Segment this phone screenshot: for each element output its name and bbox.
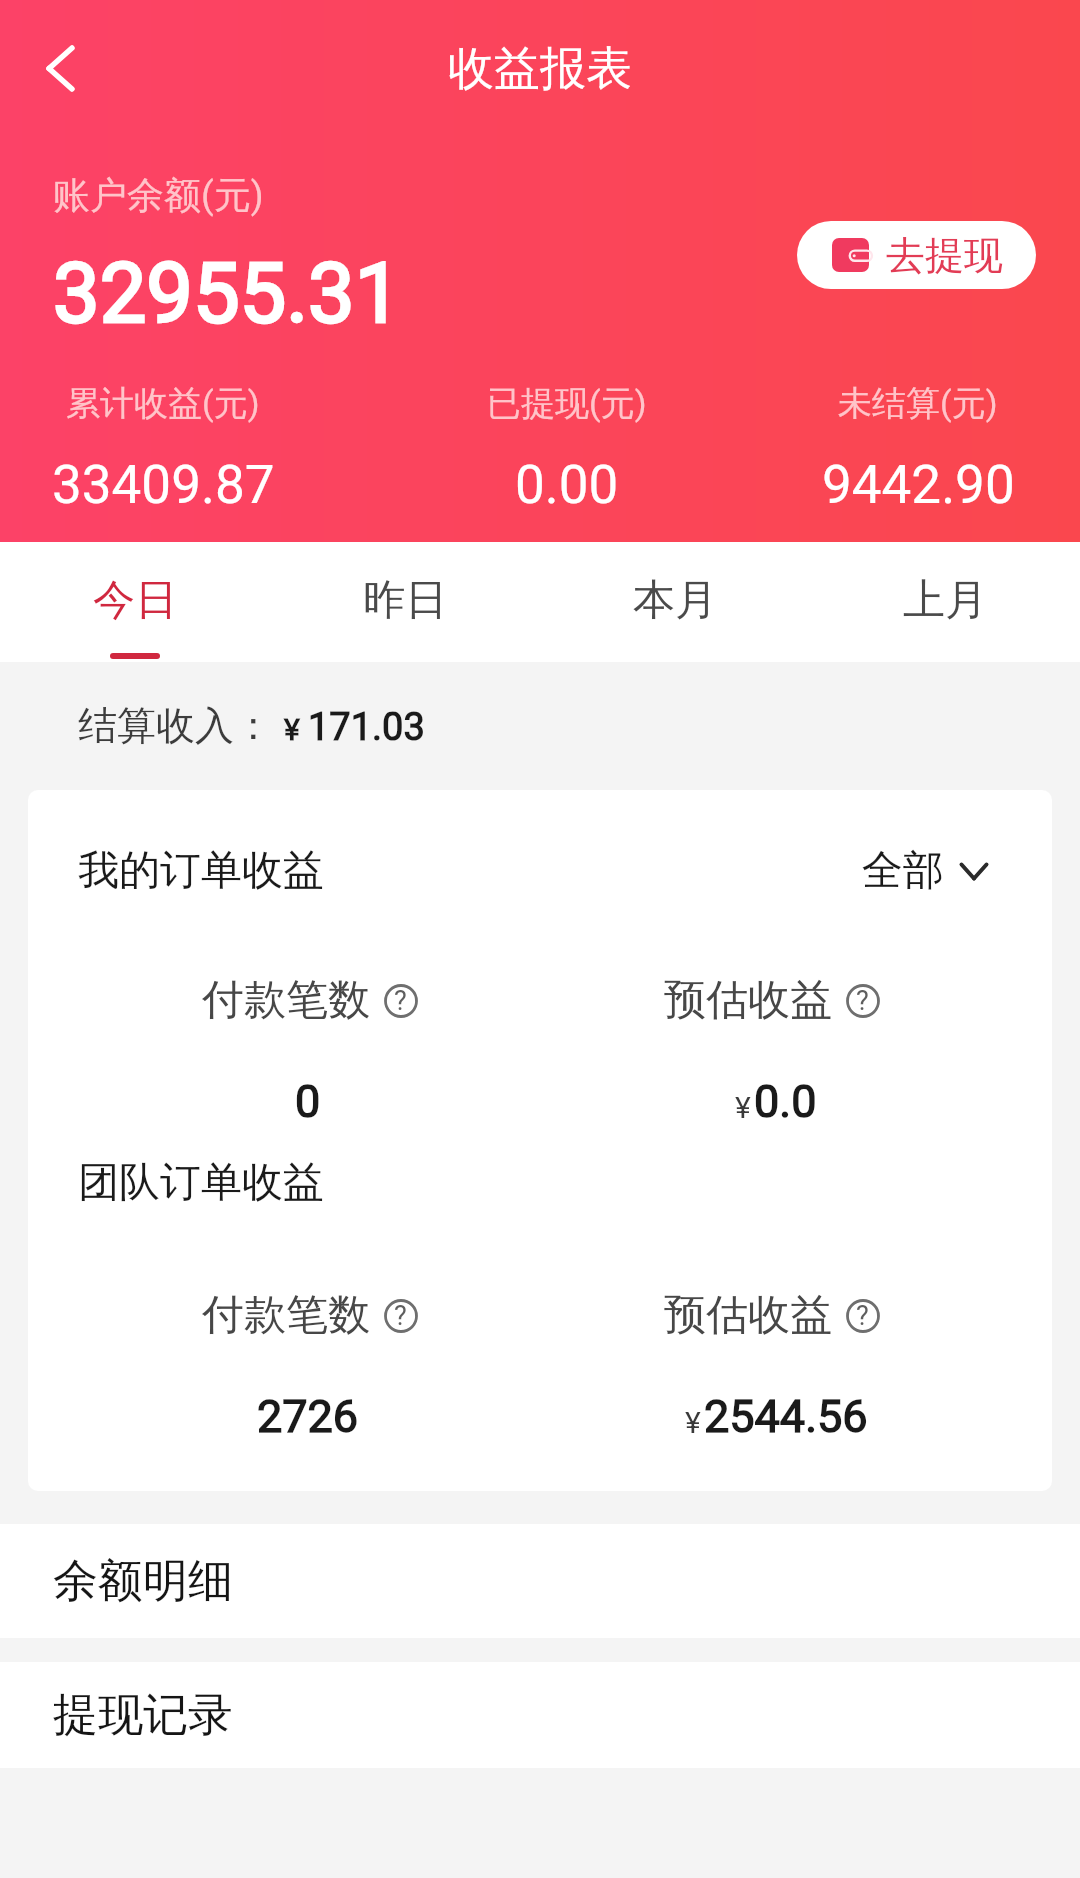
staticText: 171.03 bbox=[308, 705, 425, 750]
staticText: 预估收益 bbox=[664, 1289, 832, 1342]
button[interactable]: 余额明细 bbox=[0, 1524, 1080, 1638]
staticText: 预估收益 bbox=[664, 974, 832, 1027]
staticText: 未结算(元) bbox=[838, 382, 998, 425]
button[interactable]: Back bbox=[16, 24, 104, 112]
staticText: 9442.90 bbox=[822, 454, 1015, 516]
staticText: 收益报表 bbox=[448, 40, 632, 98]
staticText: 0.0 bbox=[754, 1075, 817, 1128]
staticText: 昨日 bbox=[363, 574, 447, 627]
staticText: 结算收入： bbox=[78, 701, 273, 750]
staticText: 余额明细 bbox=[53, 1553, 233, 1610]
staticText: 累计收益(元) bbox=[66, 382, 260, 425]
staticText: 团队订单收益 bbox=[78, 1157, 324, 1209]
button[interactable]: 昨日 bbox=[270, 542, 540, 662]
staticText: ¥ bbox=[735, 1090, 751, 1125]
staticText: ? bbox=[856, 985, 869, 1017]
staticText: 0 bbox=[295, 1075, 321, 1128]
staticText: ? bbox=[856, 1300, 869, 1332]
staticText: 已提现(元) bbox=[487, 382, 647, 425]
staticText: 0.00 bbox=[515, 454, 619, 516]
staticText: 2726 bbox=[257, 1390, 359, 1443]
button[interactable]: 提现记录 bbox=[0, 1662, 1080, 1768]
button[interactable]: 去提现 bbox=[797, 221, 1036, 289]
staticText: 付款笔数 bbox=[202, 974, 370, 1027]
staticText: 提现记录 bbox=[53, 1687, 233, 1744]
staticText: 今日 bbox=[93, 574, 177, 627]
staticText: 我的订单收益 bbox=[78, 845, 324, 897]
staticText: 32955.31 bbox=[53, 245, 402, 342]
staticText: 账户余额(元) bbox=[53, 172, 264, 219]
button[interactable]: 本月 bbox=[540, 542, 810, 662]
staticText: 33409.87 bbox=[52, 454, 275, 516]
staticText: 去提现 bbox=[886, 231, 1003, 280]
button[interactable]: 上月 bbox=[810, 542, 1080, 662]
staticText: 上月 bbox=[903, 574, 987, 627]
staticText: ? bbox=[394, 985, 407, 1017]
staticText: 本月 bbox=[633, 574, 717, 627]
staticText: 全部 bbox=[862, 845, 944, 897]
staticText: 2544.56 bbox=[704, 1390, 868, 1443]
staticText: 付款笔数 bbox=[202, 1289, 370, 1342]
staticText: ¥ bbox=[685, 1405, 701, 1440]
staticText: ? bbox=[394, 1300, 407, 1332]
button[interactable]: 今日 bbox=[0, 542, 270, 662]
staticText: ¥ bbox=[284, 712, 300, 747]
button[interactable]: 全部 bbox=[848, 835, 1002, 907]
